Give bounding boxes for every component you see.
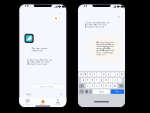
staticText: r xyxy=(94,73,95,76)
staticText: ⇧ xyxy=(80,85,82,87)
staticText: f xyxy=(96,79,97,81)
staticText: q xyxy=(80,73,81,76)
staticText: space xyxy=(99,91,104,93)
staticText: s xyxy=(87,79,88,81)
staticText: ☻ xyxy=(86,90,88,93)
staticText: n xyxy=(110,85,111,87)
button[interactable]: ⌫ xyxy=(119,84,124,88)
button[interactable]: c xyxy=(95,84,99,88)
staticText: 7 xyxy=(59,17,60,19)
button[interactable]: x xyxy=(90,84,94,88)
button[interactable]: l xyxy=(118,78,122,82)
button[interactable]: d xyxy=(90,78,94,82)
staticText: h xyxy=(105,79,106,81)
button[interactable]: j xyxy=(108,78,112,82)
button[interactable]: ☻ xyxy=(85,89,88,94)
staticText: Send xyxy=(115,91,119,93)
staticText: Is there one thing that you did today wh… xyxy=(27,59,52,65)
staticText: v xyxy=(101,85,102,87)
staticText: w xyxy=(84,73,86,76)
button[interactable]: g xyxy=(99,78,103,82)
staticText: Type something… xyxy=(40,86,54,88)
staticText: p xyxy=(121,73,122,76)
staticText: o xyxy=(117,73,118,76)
button[interactable]: k xyxy=(113,78,117,82)
button[interactable]: • xyxy=(89,89,92,94)
button[interactable]: h xyxy=(104,78,108,82)
button[interactable]: Send xyxy=(111,89,124,94)
staticText: • xyxy=(90,90,91,93)
staticText: b xyxy=(105,85,106,87)
button[interactable]: w xyxy=(83,72,87,77)
button[interactable]: i xyxy=(111,72,115,77)
button[interactable]: m xyxy=(113,84,117,88)
button[interactable]: q xyxy=(79,72,83,77)
staticText: Profile xyxy=(55,104,60,106)
button[interactable]: r xyxy=(92,72,96,77)
button[interactable]: y xyxy=(102,72,106,77)
staticText: z xyxy=(87,85,88,87)
staticText: Reflect xyxy=(26,93,32,96)
button[interactable]: Type something… xyxy=(32,84,64,89)
staticText: y xyxy=(103,73,104,76)
staticText: 123 xyxy=(80,91,83,93)
button[interactable]: v xyxy=(99,84,103,88)
button[interactable]: e xyxy=(88,72,92,77)
button[interactable]: p xyxy=(120,72,124,77)
button[interactable]: o xyxy=(115,72,119,77)
staticText: ⌫ xyxy=(120,85,123,87)
staticText: That was a great achievement! xyxy=(31,47,47,52)
staticText: Is there one thing that you did today wh… xyxy=(84,21,109,28)
button[interactable]: 7 xyxy=(53,16,62,20)
staticText: u xyxy=(108,73,109,76)
button[interactable]: 123 xyxy=(79,89,84,94)
staticText: I didn't get to personal work as much as… xyxy=(96,41,114,55)
staticText: x xyxy=(92,85,93,87)
button[interactable]: ⇧ xyxy=(79,84,84,88)
staticText: Reflect xyxy=(40,104,46,106)
button[interactable]: Profile xyxy=(52,99,64,106)
staticText: 9:41 xyxy=(25,5,29,7)
button[interactable]: Reflect xyxy=(37,99,49,106)
button[interactable]: z xyxy=(86,84,90,88)
button[interactable]: u xyxy=(106,72,110,77)
staticText: Journal xyxy=(25,104,31,106)
staticText: 9:41 xyxy=(83,5,87,7)
staticText: e xyxy=(89,73,90,76)
button[interactable]: b xyxy=(104,84,108,88)
button[interactable]: Journal xyxy=(22,99,34,106)
button[interactable]: n xyxy=(108,84,112,88)
staticText: m xyxy=(114,85,116,87)
button[interactable]: t xyxy=(97,72,101,77)
button[interactable]: s xyxy=(86,78,90,82)
button[interactable]: f xyxy=(95,78,99,82)
button[interactable]: a xyxy=(81,78,85,82)
button[interactable]: space xyxy=(93,89,110,94)
staticText: k xyxy=(114,79,115,81)
